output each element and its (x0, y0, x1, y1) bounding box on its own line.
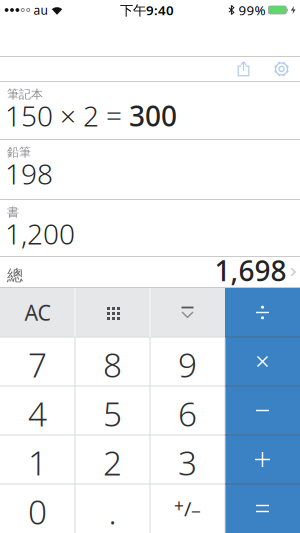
staticText: 總 (7, 266, 23, 285)
staticText: − (191, 500, 201, 523)
button[interactable]: . (75, 484, 150, 533)
button[interactable]: 6 (150, 386, 225, 435)
staticText: 8 (103, 342, 122, 387)
staticText: 9 (178, 342, 197, 387)
staticText: 2 (103, 440, 122, 485)
staticText: 筆記本 (7, 87, 43, 102)
button[interactable] (150, 288, 225, 337)
staticText: AC (24, 298, 50, 327)
staticText: au (33, 2, 47, 18)
button[interactable]: 總 (0, 257, 300, 287)
button[interactable]: 8 (75, 337, 150, 386)
button[interactable]: AC (0, 288, 75, 337)
staticText: 1,200 (5, 215, 75, 252)
button[interactable] (225, 288, 300, 337)
staticText: 書 (7, 205, 19, 220)
button[interactable]: 0 (0, 484, 75, 533)
staticText: 鉛筆 (7, 145, 31, 160)
staticText: 300 (129, 97, 177, 134)
staticText: / (184, 495, 191, 522)
button[interactable]: 4 (0, 386, 75, 435)
button[interactable]: 7 (0, 337, 75, 386)
staticText: 150 × 2 = (5, 97, 129, 134)
staticText: 下午9:40 (120, 1, 174, 19)
button[interactable] (225, 386, 300, 435)
button[interactable]: 1 (0, 435, 75, 484)
button[interactable] (274, 61, 289, 76)
staticText: . (108, 489, 116, 533)
staticText: 198 (5, 155, 53, 192)
staticText: 7 (28, 342, 47, 387)
button[interactable] (75, 288, 150, 337)
button[interactable]: 鉛筆 (0, 140, 300, 199)
staticText: + (174, 494, 184, 517)
button[interactable]: 2 (75, 435, 150, 484)
button[interactable]: 5 (75, 386, 150, 435)
staticText: 5 (103, 391, 122, 436)
button[interactable]: 筆記本 (0, 82, 300, 139)
button[interactable]: + (150, 484, 225, 533)
button[interactable] (225, 435, 300, 484)
button[interactable]: 3 (150, 435, 225, 484)
button[interactable]: 9 (150, 337, 225, 386)
button[interactable] (237, 61, 250, 76)
staticText: 3 (178, 440, 197, 485)
button[interactable]: 書 (0, 200, 300, 256)
staticText: 6 (178, 391, 197, 436)
staticText: 99% (238, 1, 265, 19)
button[interactable] (225, 337, 300, 386)
staticText: 0 (28, 489, 47, 533)
staticText: 4 (28, 391, 47, 436)
button[interactable] (225, 484, 300, 533)
staticText: 1,698 (214, 252, 286, 289)
staticText: 1 (28, 440, 47, 485)
